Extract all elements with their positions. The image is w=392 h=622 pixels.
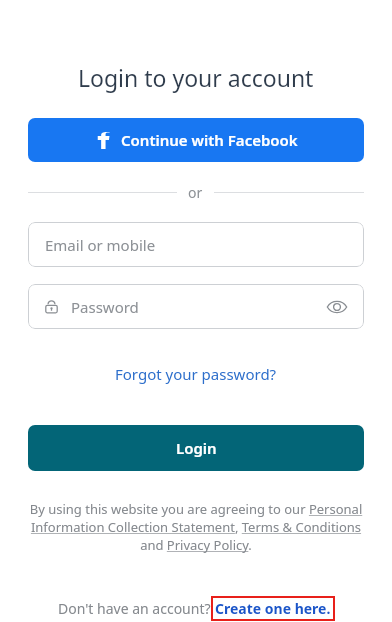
button[interactable]: Create one here.: [211, 596, 335, 621]
staticText: Login: [176, 438, 217, 458]
button[interactable]: Show password: [324, 294, 350, 320]
staticText: Don't have an account?: [58, 599, 211, 618]
staticText: By using this website you are agreeing t…: [28, 500, 364, 554]
staticText: Password: [71, 297, 139, 317]
button[interactable]: Forgot your password?: [111, 360, 281, 388]
staticText: Email or mobile: [45, 235, 156, 255]
staticText: Create one here.: [215, 599, 331, 618]
staticText: Login to your account: [78, 62, 314, 93]
button[interactable]: Password: [28, 284, 364, 329]
button[interactable]: Login: [28, 425, 364, 471]
staticText: Forgot your password?: [115, 364, 277, 384]
staticText: or: [188, 183, 203, 202]
button[interactable]: Email or mobile: [28, 222, 364, 267]
button[interactable]: Continue with Facebook: [28, 118, 364, 162]
staticText: Continue with Facebook: [121, 130, 298, 150]
